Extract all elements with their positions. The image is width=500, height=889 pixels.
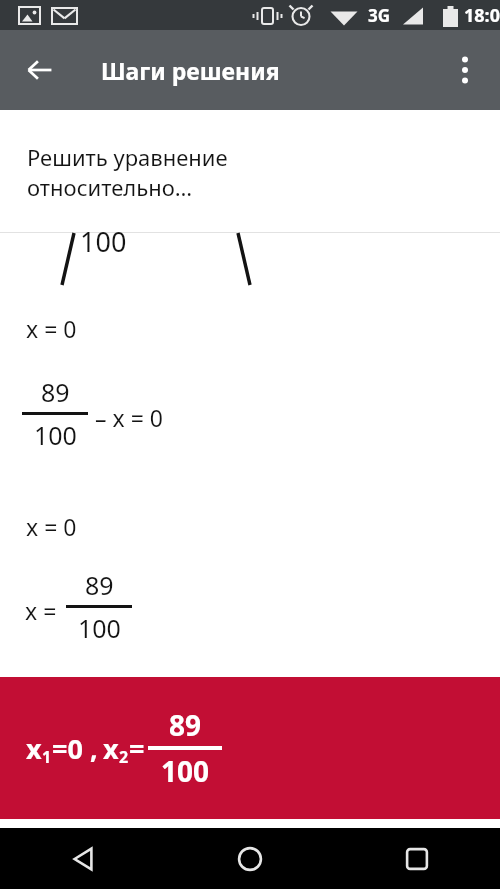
staticText: x = 0 bbox=[26, 511, 77, 542]
staticText: 100 bbox=[34, 418, 77, 452]
staticText: = bbox=[129, 730, 145, 767]
staticText: относительно… bbox=[27, 172, 193, 202]
staticText: 89 bbox=[169, 706, 202, 744]
button[interactable]: Back bbox=[0, 828, 166, 889]
staticText: Шаги решения bbox=[101, 55, 280, 86]
staticText: x = bbox=[25, 595, 57, 626]
staticText: 18:07 bbox=[464, 3, 500, 28]
button[interactable]: Recent apps bbox=[333, 828, 500, 889]
staticText: x bbox=[26, 730, 42, 767]
staticText: – x = 0 bbox=[95, 402, 163, 433]
staticText: 3G bbox=[368, 4, 391, 27]
staticText: Решить уравнение bbox=[27, 142, 228, 172]
staticText: 89 bbox=[41, 375, 70, 409]
staticText: 100 bbox=[78, 611, 121, 645]
staticText: 1 bbox=[42, 746, 52, 768]
button[interactable]: More options bbox=[439, 44, 491, 96]
button[interactable]: x bbox=[0, 677, 500, 819]
staticText: 100 bbox=[161, 752, 210, 790]
staticText: 2 bbox=[119, 746, 129, 768]
staticText: =0 , bbox=[52, 730, 98, 767]
staticText: 89 bbox=[85, 568, 114, 602]
staticText: x bbox=[103, 730, 119, 767]
staticText: x = 0 bbox=[26, 313, 77, 344]
button[interactable]: Back bbox=[12, 42, 68, 98]
button[interactable]: Home bbox=[166, 828, 333, 889]
staticText: 100 bbox=[80, 223, 127, 260]
